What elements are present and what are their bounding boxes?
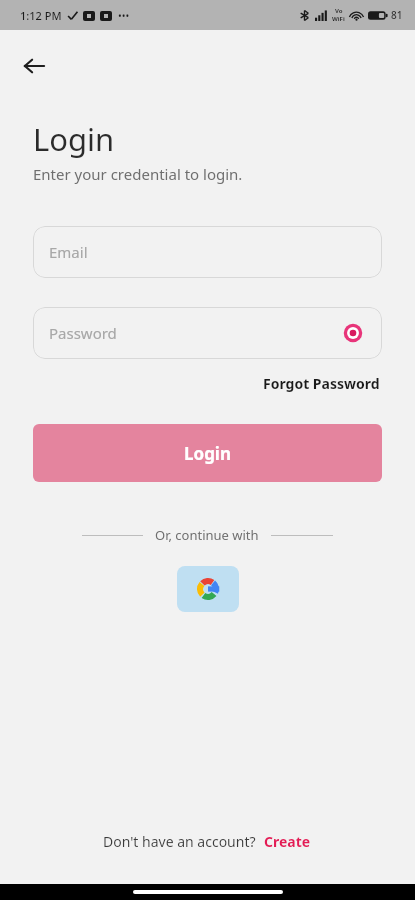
button[interactable]: Email [33, 226, 382, 278]
button[interactable]: Create [256, 829, 313, 854]
staticText: Or, continue with [155, 526, 259, 544]
button[interactable]: Show password [338, 318, 368, 348]
staticText: Login [184, 442, 232, 465]
staticText: Don't have an account? [103, 832, 256, 851]
staticText: Create [264, 832, 311, 851]
staticText: WiFi [332, 15, 345, 23]
staticText: 81 [391, 8, 403, 22]
staticText: Login [33, 118, 115, 160]
button[interactable]: Login [33, 424, 382, 482]
staticText: Password [49, 323, 117, 343]
staticText: Email [49, 242, 88, 262]
button[interactable]: Back [12, 44, 56, 88]
staticText: Forgot Password [263, 374, 380, 393]
button[interactable]: Forgot Password [261, 371, 382, 396]
staticText: Enter your credential to login. [33, 164, 243, 184]
staticText: 1:12 PM [20, 8, 62, 23]
button[interactable]: Password [33, 307, 382, 359]
staticText: Vo [335, 7, 343, 15]
button[interactable]: Continue with Google [177, 566, 239, 612]
staticText: ••• [118, 9, 130, 23]
